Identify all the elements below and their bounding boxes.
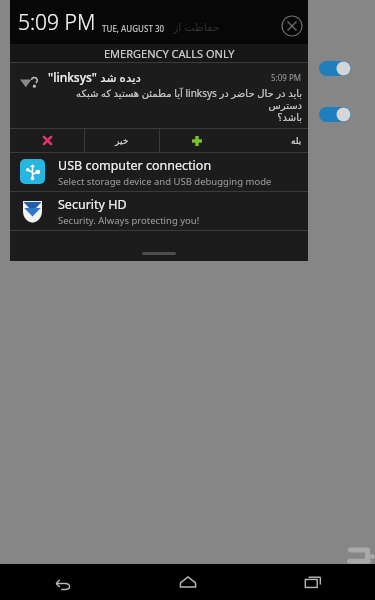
button[interactable] [160,129,234,152]
staticText: TUE, AUGUST 30 [102,23,165,34]
staticText: 5:09 PM [18,8,96,37]
button[interactable]: "linksys" دیده شد [10,63,308,152]
staticText: بله [291,136,302,146]
button[interactable]: Home [125,564,250,600]
staticText: خیر [115,136,129,146]
staticText: Select storage device and USB debugging … [58,175,272,188]
button[interactable]: USB computer connection [10,153,308,191]
button[interactable]: Security HD [10,192,308,230]
staticText: EMERGENCY CALLS ONLY [104,46,235,61]
staticText: حفاظت از [173,19,220,34]
button[interactable]: Recent apps [250,564,375,600]
staticText: USB computer connection [58,157,212,174]
staticText: 5:09 PM [271,72,302,83]
button[interactable]: بله [234,129,308,152]
staticText: Security. Always protecting you! [58,214,200,227]
button[interactable]: Toggle [319,61,351,76]
staticText: Security HD [58,196,127,213]
button[interactable]: Close [281,15,303,37]
staticText: "linksys" دیده شد [48,69,141,85]
button[interactable]: Back [0,564,125,600]
button[interactable]: Toggle [319,107,351,122]
button[interactable]: خیر [85,129,159,152]
button[interactable]: No [10,129,84,152]
staticText: آیا مطمئن هستید که شبکه linksys باید در … [48,86,302,124]
